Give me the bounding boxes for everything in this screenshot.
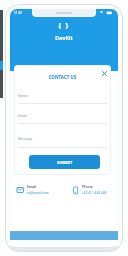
staticText: Email — [27, 184, 37, 189]
staticText: { } — [10, 21, 118, 31]
staticText: SUBMIT — [57, 160, 73, 165]
staticText: Email — [18, 113, 27, 118]
button[interactable]: Name — [18, 91, 107, 104]
button[interactable] — [101, 70, 108, 77]
button[interactable]: Email — [18, 111, 107, 124]
button[interactable]: SUBMIT — [29, 155, 100, 169]
staticText: 11:37 — [14, 11, 23, 15]
staticText: Name — [18, 93, 28, 98]
staticText: CONTACT US — [14, 74, 111, 80]
staticText: xx@email.com — [27, 191, 49, 195]
staticText: Phone — [82, 184, 93, 189]
button[interactable]: Message — [18, 134, 107, 148]
staticText: DevKit — [10, 34, 118, 41]
staticText: +62 411 444 444 — [82, 191, 107, 195]
staticText: Message — [18, 136, 33, 141]
button[interactable]: Email — [17, 184, 118, 197]
